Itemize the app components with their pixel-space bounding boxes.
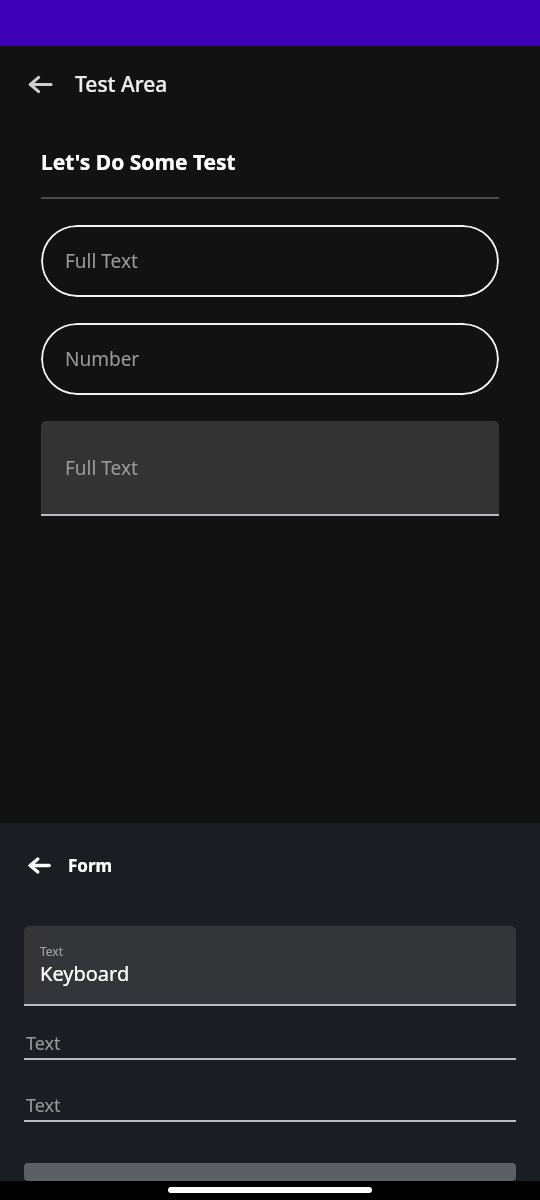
button[interactable]: Back (15, 841, 63, 889)
staticText: Let's Do Some Test (41, 148, 236, 177)
button[interactable]: Back (16, 60, 64, 108)
staticText: Full Text (65, 248, 138, 274)
button[interactable]: Full Text (41, 421, 499, 516)
staticText: Form (68, 854, 113, 877)
staticText: Text (26, 1093, 61, 1118)
staticText: Number (65, 346, 140, 372)
button[interactable]: Text (24, 1028, 516, 1060)
button[interactable]: Text (24, 926, 516, 1006)
staticText: Keyboard (40, 960, 130, 987)
button[interactable]: Text (24, 1090, 516, 1122)
staticText: Full Text (65, 455, 138, 481)
staticText: Test Area (75, 70, 168, 99)
staticText: Text (40, 943, 64, 959)
staticText: Text (26, 1031, 61, 1056)
button[interactable]: Full Text (41, 225, 499, 297)
button[interactable]: Number (41, 323, 499, 395)
